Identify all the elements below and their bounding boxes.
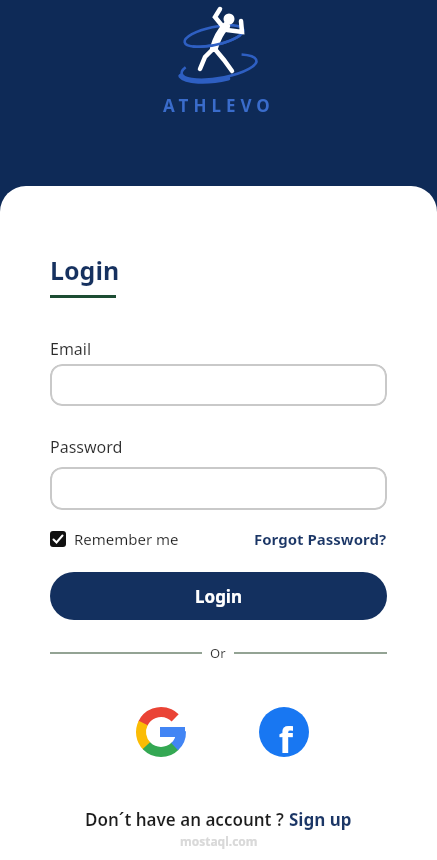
button[interactable]: f xyxy=(259,707,309,757)
staticText: ATHLEVO xyxy=(163,94,275,117)
staticText: f xyxy=(279,715,293,757)
button[interactable]: Login xyxy=(50,572,387,620)
button[interactable] xyxy=(136,707,186,757)
staticText: Login xyxy=(50,253,120,287)
button[interactable]: Remember me xyxy=(50,529,179,549)
staticText: Don´t have an account ? xyxy=(85,808,289,831)
staticText: Email xyxy=(50,338,92,360)
staticText: Remember me xyxy=(74,529,179,549)
button[interactable] xyxy=(50,364,387,406)
button[interactable]: Sign up xyxy=(289,808,352,831)
staticText: mostaql.com xyxy=(180,833,258,849)
staticText: Login xyxy=(195,585,243,608)
staticText: Password xyxy=(50,436,123,458)
staticText: Or xyxy=(210,644,226,662)
button[interactable]: Forgot Password? xyxy=(254,529,387,549)
button[interactable] xyxy=(50,467,387,510)
